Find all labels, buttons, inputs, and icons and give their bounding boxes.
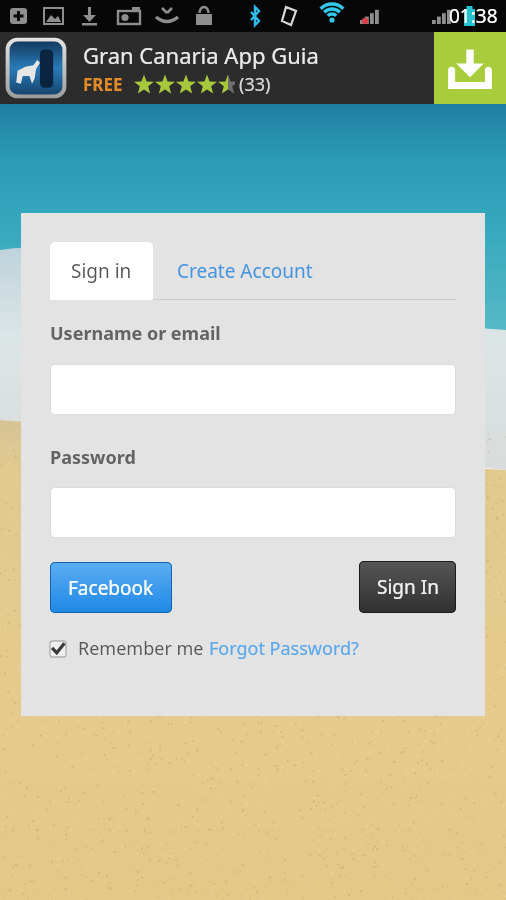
staticText: Sign in bbox=[71, 258, 132, 284]
button[interactable] bbox=[50, 364, 456, 415]
staticText: FREE bbox=[83, 73, 123, 96]
button[interactable]: Create Account bbox=[153, 242, 337, 300]
staticText: Password bbox=[50, 445, 136, 470]
button[interactable]: Remember me bbox=[50, 641, 66, 657]
staticText: Gran Canaria App Guia bbox=[83, 40, 319, 70]
button[interactable]: Sign in bbox=[50, 242, 153, 300]
button[interactable] bbox=[50, 487, 456, 538]
button[interactable]: Sign In bbox=[359, 561, 456, 613]
staticText: (33) bbox=[239, 72, 271, 97]
staticText: 01:38 bbox=[449, 3, 498, 29]
button[interactable]: Facebook bbox=[50, 562, 172, 613]
button[interactable]: Download bbox=[434, 32, 506, 104]
staticText: Facebook bbox=[68, 575, 154, 601]
button[interactable]: Forgot Password? bbox=[209, 636, 359, 661]
staticText: Forgot Password? bbox=[209, 636, 359, 661]
staticText: Create Account bbox=[177, 258, 313, 284]
staticText: Remember me bbox=[78, 636, 209, 661]
staticText: Username or email bbox=[50, 321, 221, 346]
staticText: Sign In bbox=[377, 574, 439, 600]
